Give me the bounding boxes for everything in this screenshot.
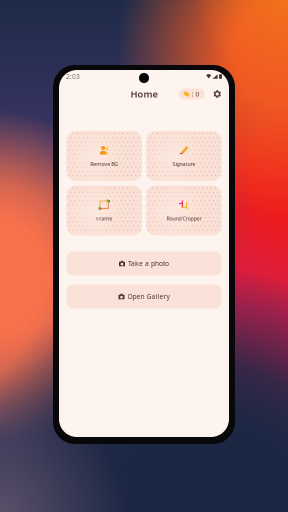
- button[interactable]: Settings: [213, 90, 221, 98]
- staticText: Frame: [96, 215, 112, 222]
- staticText: 2:03: [66, 72, 80, 81]
- button[interactable]: Take a photo: [66, 251, 221, 275]
- staticText: Home: [130, 88, 157, 100]
- button[interactable]: Open Gallery: [66, 284, 221, 308]
- button[interactable]: Remove BG: [66, 131, 142, 181]
- staticText: Remove BG: [90, 160, 118, 168]
- staticText: Round Cropper: [166, 215, 201, 222]
- staticText: Take a photo: [128, 259, 169, 268]
- button[interactable]: Frame: [66, 185, 142, 235]
- button[interactable]: Signature: [146, 131, 221, 181]
- staticText: : 0: [191, 90, 199, 98]
- button[interactable]: Round Cropper: [146, 185, 221, 235]
- button[interactable]: : 0: [178, 88, 204, 99]
- staticText: Open Gallery: [127, 292, 169, 301]
- staticText: Signature: [172, 160, 195, 168]
